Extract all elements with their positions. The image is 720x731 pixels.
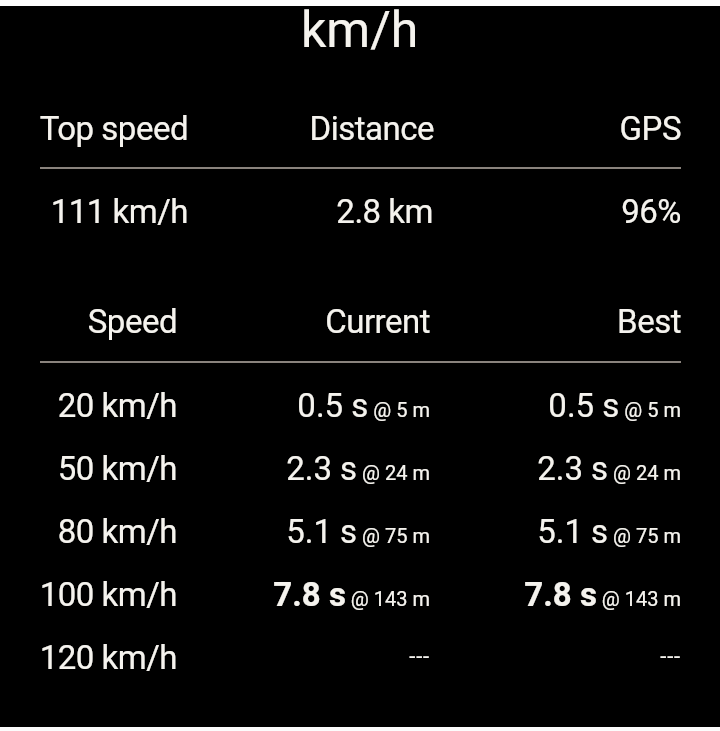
button[interactable]: 100 km/h acceleration [0, 565, 720, 628]
staticText: Current [200, 302, 430, 341]
staticText: 96% [450, 192, 681, 231]
button[interactable]: Switch speed unit [0, 1, 720, 67]
staticText: 80 km/h [0, 512, 177, 551]
staticText: Best [450, 302, 681, 341]
button[interactable]: Trip summary values [0, 180, 720, 242]
staticText: 120 km/h [0, 638, 177, 677]
staticText: 7.8 s @ 143 m [485, 575, 681, 614]
staticText: 50 km/h [0, 449, 177, 488]
staticText: Distance [200, 109, 434, 148]
staticText: 7.8 s @ 143 m [232, 575, 430, 614]
button[interactable]: Trip summary headings [0, 96, 720, 158]
staticText: 20 km/h [0, 386, 177, 425]
staticText: Top speed [0, 109, 188, 148]
button[interactable]: 120 km/h acceleration [0, 628, 720, 691]
staticText: 0.5 s @ 5 m [232, 386, 430, 425]
staticText: 2.3 s @ 24 m [232, 449, 430, 488]
button[interactable]: 80 km/h acceleration [0, 502, 720, 565]
staticText: --- [485, 644, 681, 670]
button[interactable]: 20 km/h acceleration [0, 376, 720, 439]
staticText: 2.8 km [200, 192, 433, 231]
staticText: Speed [0, 302, 177, 341]
staticText: 100 km/h [0, 575, 177, 614]
staticText: 5.1 s @ 75 m [485, 512, 681, 551]
staticText: GPS [450, 109, 681, 148]
staticText: 0.5 s @ 5 m [485, 386, 681, 425]
staticText: 111 km/h [0, 192, 188, 231]
staticText: 2.3 s @ 24 m [485, 449, 681, 488]
staticText: --- [232, 644, 430, 670]
staticText: 5.1 s @ 75 m [232, 512, 430, 551]
staticText: km/h [301, 1, 419, 60]
button[interactable]: 50 km/h acceleration [0, 439, 720, 502]
button[interactable]: Acceleration headings [0, 291, 720, 351]
